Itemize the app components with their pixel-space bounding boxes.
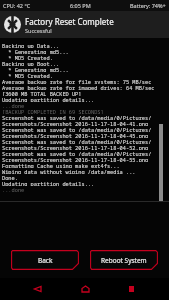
button[interactable]: Recent apps xyxy=(119,278,143,300)
staticText: Screenshots/Screenshot_2016-11-17-18-04-… xyxy=(2,132,149,138)
staticText: CPU: 42 °C xyxy=(3,2,31,9)
staticText: [3600 MB TOTAL BACKED UP] xyxy=(2,90,82,96)
staticText: Screenshot was saved to /data/media/0/Pi… xyxy=(2,138,152,144)
staticText: Screenshots/Screenshot_2016-11-17-18-04-… xyxy=(2,144,149,150)
staticText: Backing up Boot... xyxy=(2,60,60,66)
staticText: ...done xyxy=(2,186,25,192)
staticText: Screenshots/Screenshot_2016-11-17-18-04-… xyxy=(2,120,149,126)
staticText: Screenshot was saved to /data/media/0/Pi… xyxy=(2,150,152,156)
staticText: * Generating md5... xyxy=(2,66,69,72)
staticText: Average backup rate for file systems: 75… xyxy=(2,78,152,84)
staticText: Screenshot was saved to /data/media/0/Pi… xyxy=(2,114,152,120)
staticText: * MD5 Created. xyxy=(2,72,53,78)
button[interactable]: Back xyxy=(11,250,79,270)
staticText: Average backup rate for imaged drives: 6… xyxy=(2,84,155,90)
button[interactable]: Reboot System xyxy=(90,250,158,270)
staticText: Battery: 74%+ xyxy=(130,2,166,9)
staticText: Back xyxy=(38,256,53,265)
staticText: * Generating md5... xyxy=(2,48,69,54)
staticText: Backing up Data... xyxy=(2,42,60,48)
staticText: Reboot System xyxy=(101,256,147,265)
staticText: Updating partition details... xyxy=(2,180,95,186)
staticText: Updating partition details... xyxy=(2,96,95,102)
staticText: Screenshot was saved to /data/media/0/Pi… xyxy=(2,126,152,132)
button[interactable]: Back xyxy=(25,278,49,300)
staticText: Screenshots/Screenshot_2016-11-17-18-04-… xyxy=(2,156,149,162)
staticText: Formatting Cache using make_ext4fs... xyxy=(2,162,120,168)
staticText: * MD5 Created. xyxy=(2,54,53,60)
staticText: Done. xyxy=(2,174,18,180)
staticText: ...done xyxy=(2,102,25,108)
staticText: Factory Reset Complete xyxy=(25,16,114,27)
staticText: Successful xyxy=(25,27,52,34)
staticText: [BACKUP COMPLETED IN 69 SECONDS] xyxy=(2,108,104,114)
staticText: Wiping data without wiping /data/media .… xyxy=(2,168,136,174)
staticText: 6:05 PM xyxy=(70,2,91,9)
button[interactable]: Home xyxy=(73,278,97,300)
